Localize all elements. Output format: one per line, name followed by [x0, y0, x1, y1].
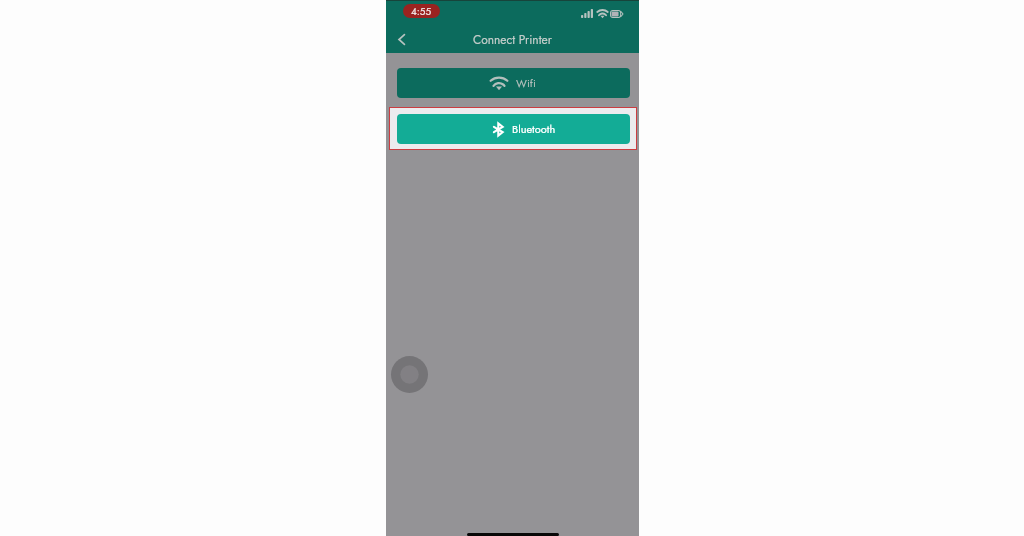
- button[interactable]: Wifi: [397, 68, 630, 98]
- staticText: Wifi: [516, 75, 536, 91]
- staticText: 4:55: [411, 4, 432, 18]
- button[interactable]: Back: [393, 31, 410, 48]
- staticText: Bluetooth: [512, 121, 556, 137]
- staticText: Connect Printer: [473, 31, 552, 48]
- button[interactable]: Bluetooth: [397, 114, 630, 144]
